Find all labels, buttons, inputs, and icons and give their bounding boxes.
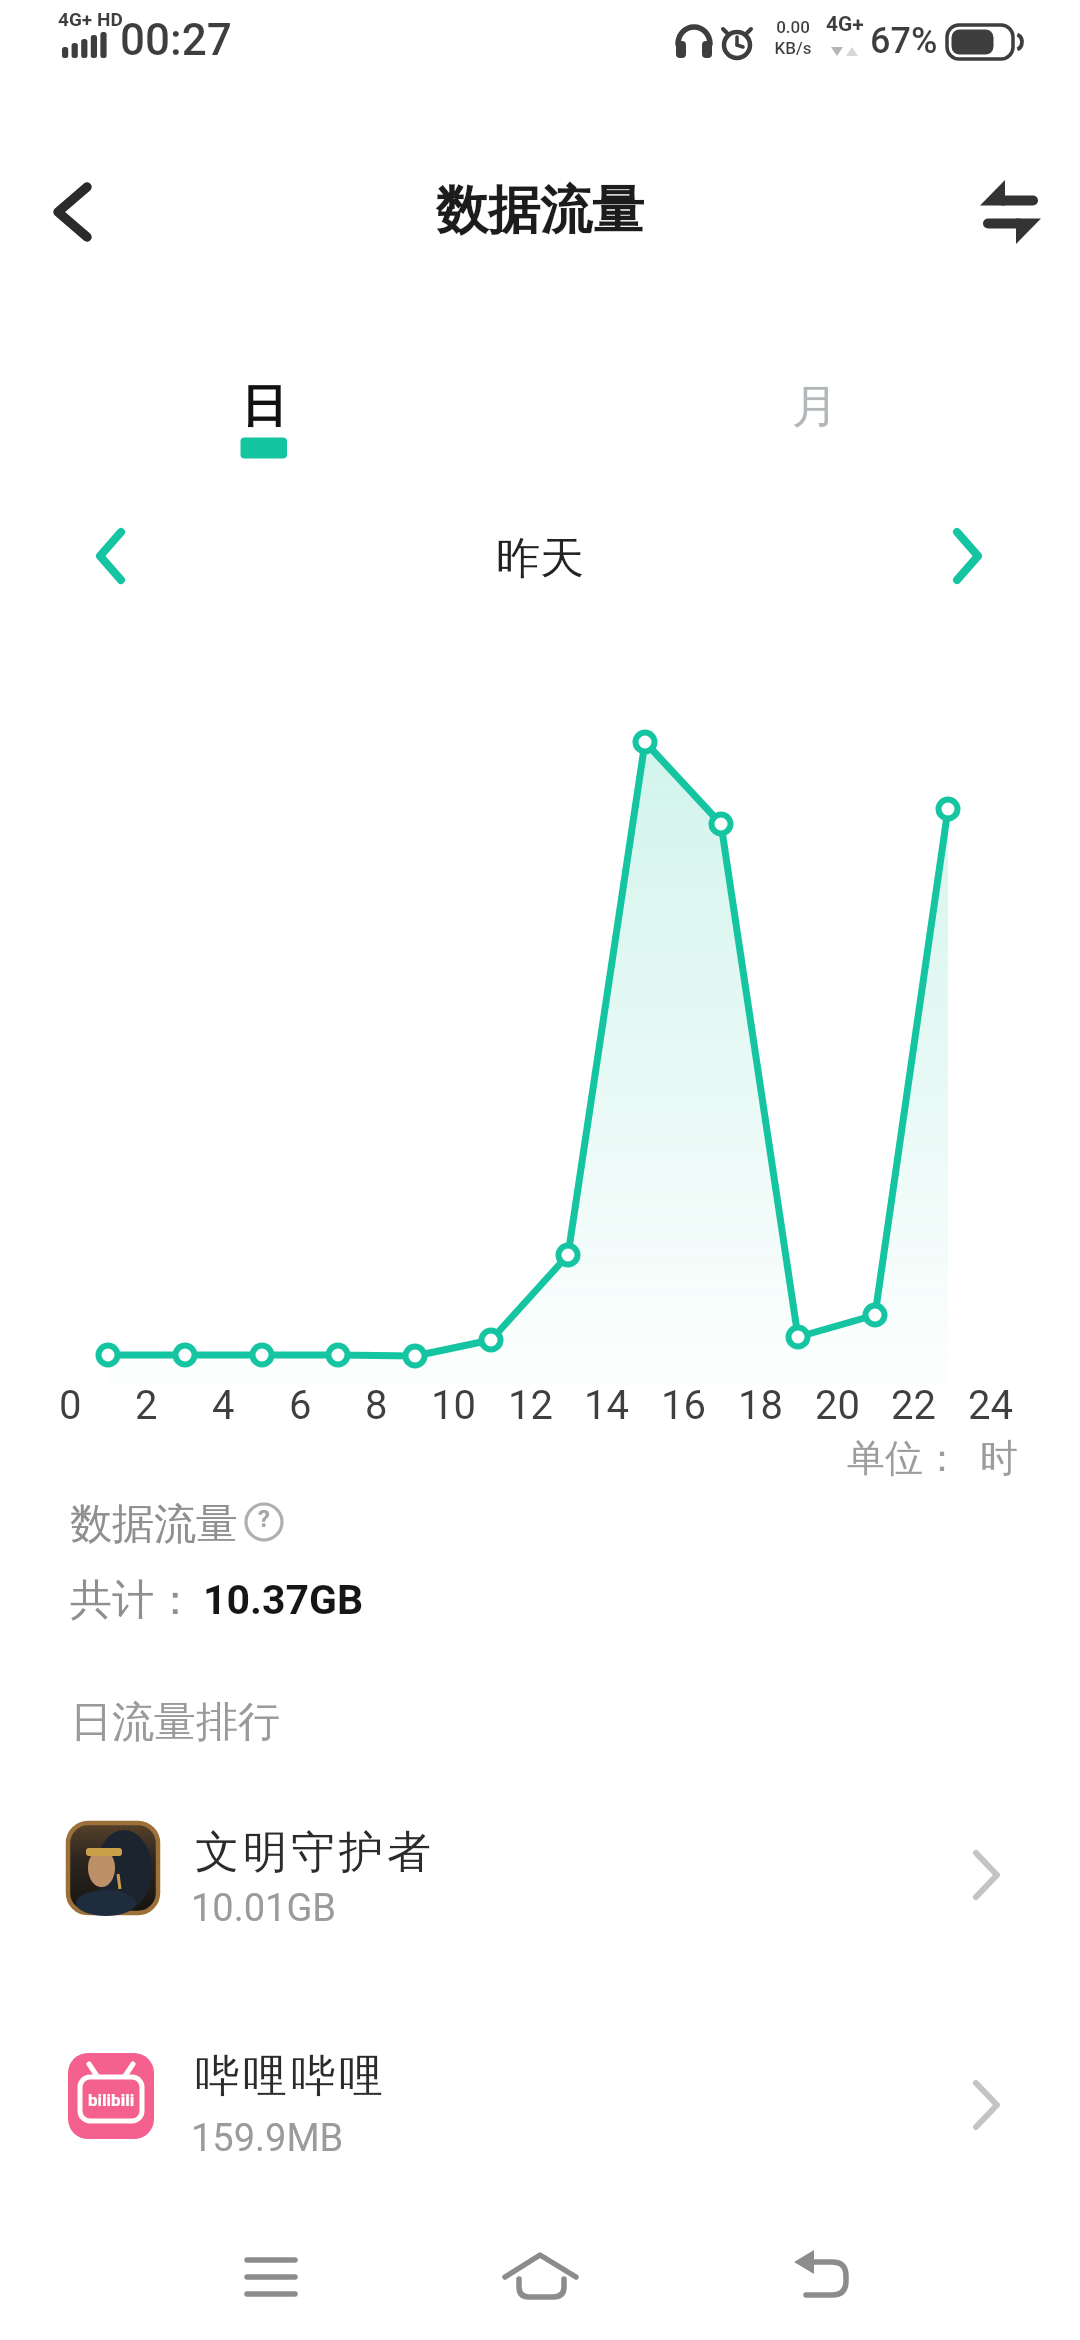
staticText: 日流量排行	[70, 1696, 280, 1749]
button[interactable]: 日	[163, 350, 363, 465]
button[interactable]: 文明守护者	[0, 1800, 1080, 1965]
staticText: 文明守护者	[193, 1825, 433, 1880]
button[interactable]	[755, 2222, 890, 2334]
staticText: 0	[59, 1382, 82, 1429]
button[interactable]	[238, 1504, 284, 1550]
staticText: 10.37GB	[203, 1576, 364, 1624]
button[interactable]	[955, 168, 1060, 258]
staticText: 159.9MB	[191, 2116, 344, 2161]
staticText: 20	[815, 1382, 860, 1429]
button[interactable]	[470, 2222, 610, 2334]
staticText: 数据流量	[70, 1498, 238, 1551]
staticText: 数据流量	[436, 178, 644, 244]
staticText: 6	[289, 1382, 312, 1429]
staticText: 10	[431, 1382, 476, 1429]
staticText: bilibili	[88, 2090, 135, 2110]
staticText: 12	[508, 1382, 553, 1429]
staticText: 2	[135, 1382, 158, 1429]
button[interactable]	[191, 2222, 351, 2334]
button[interactable]	[60, 506, 160, 606]
staticText: 14	[584, 1382, 629, 1429]
staticText: 4	[212, 1382, 235, 1429]
staticText: 昨天	[496, 531, 584, 586]
staticText: 4G+	[826, 12, 864, 37]
staticText: 24	[968, 1382, 1013, 1429]
button[interactable]: 月	[715, 350, 915, 465]
button[interactable]	[920, 506, 1020, 606]
staticText: 日	[241, 378, 287, 436]
staticText: 共计：	[70, 1574, 196, 1627]
button[interactable]	[30, 168, 120, 258]
staticText: 0.00 KB/s	[763, 17, 823, 58]
staticText: 4G+ HD	[58, 8, 123, 30]
staticText: 22	[891, 1382, 936, 1429]
staticText: 10.01GB	[191, 1886, 337, 1931]
staticText: 8	[365, 1382, 388, 1429]
staticText: 18	[738, 1382, 783, 1429]
staticText: 16	[661, 1382, 706, 1429]
staticText: 月	[792, 378, 838, 436]
staticText: 67%	[870, 20, 938, 62]
staticText: ?	[258, 1505, 270, 1533]
button[interactable]: 哔哩哔哩	[0, 2030, 1080, 2195]
staticText: 00:27	[120, 14, 232, 66]
staticText: 单位： 时	[847, 1434, 1018, 1482]
staticText: 哔哩哔哩	[193, 2049, 385, 2104]
